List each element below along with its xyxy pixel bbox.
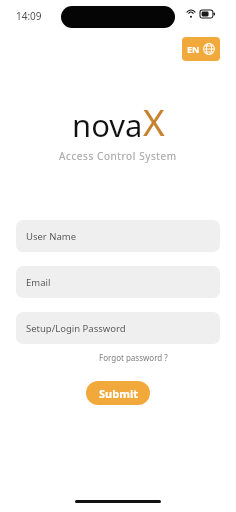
staticText: nova <box>72 104 143 146</box>
staticText: Forgot password ? <box>99 352 168 363</box>
button[interactable]: Change language, English <box>182 37 220 61</box>
staticText: X <box>143 96 165 146</box>
staticText: 14:09 <box>16 9 42 23</box>
staticText: User Name <box>26 230 77 243</box>
button[interactable]: User Name <box>16 220 220 252</box>
button[interactable]: Setup/Login Password <box>16 312 220 344</box>
button[interactable]: Forgot password ? <box>97 350 170 365</box>
staticText: Access Control System <box>59 149 177 163</box>
staticText: EN <box>187 43 200 55</box>
staticText: Setup/Login Password <box>26 322 126 335</box>
button[interactable]: Email <box>16 266 220 298</box>
staticText: Email <box>26 276 51 289</box>
staticText: Submit <box>99 386 138 401</box>
button[interactable]: Submit <box>86 381 150 405</box>
